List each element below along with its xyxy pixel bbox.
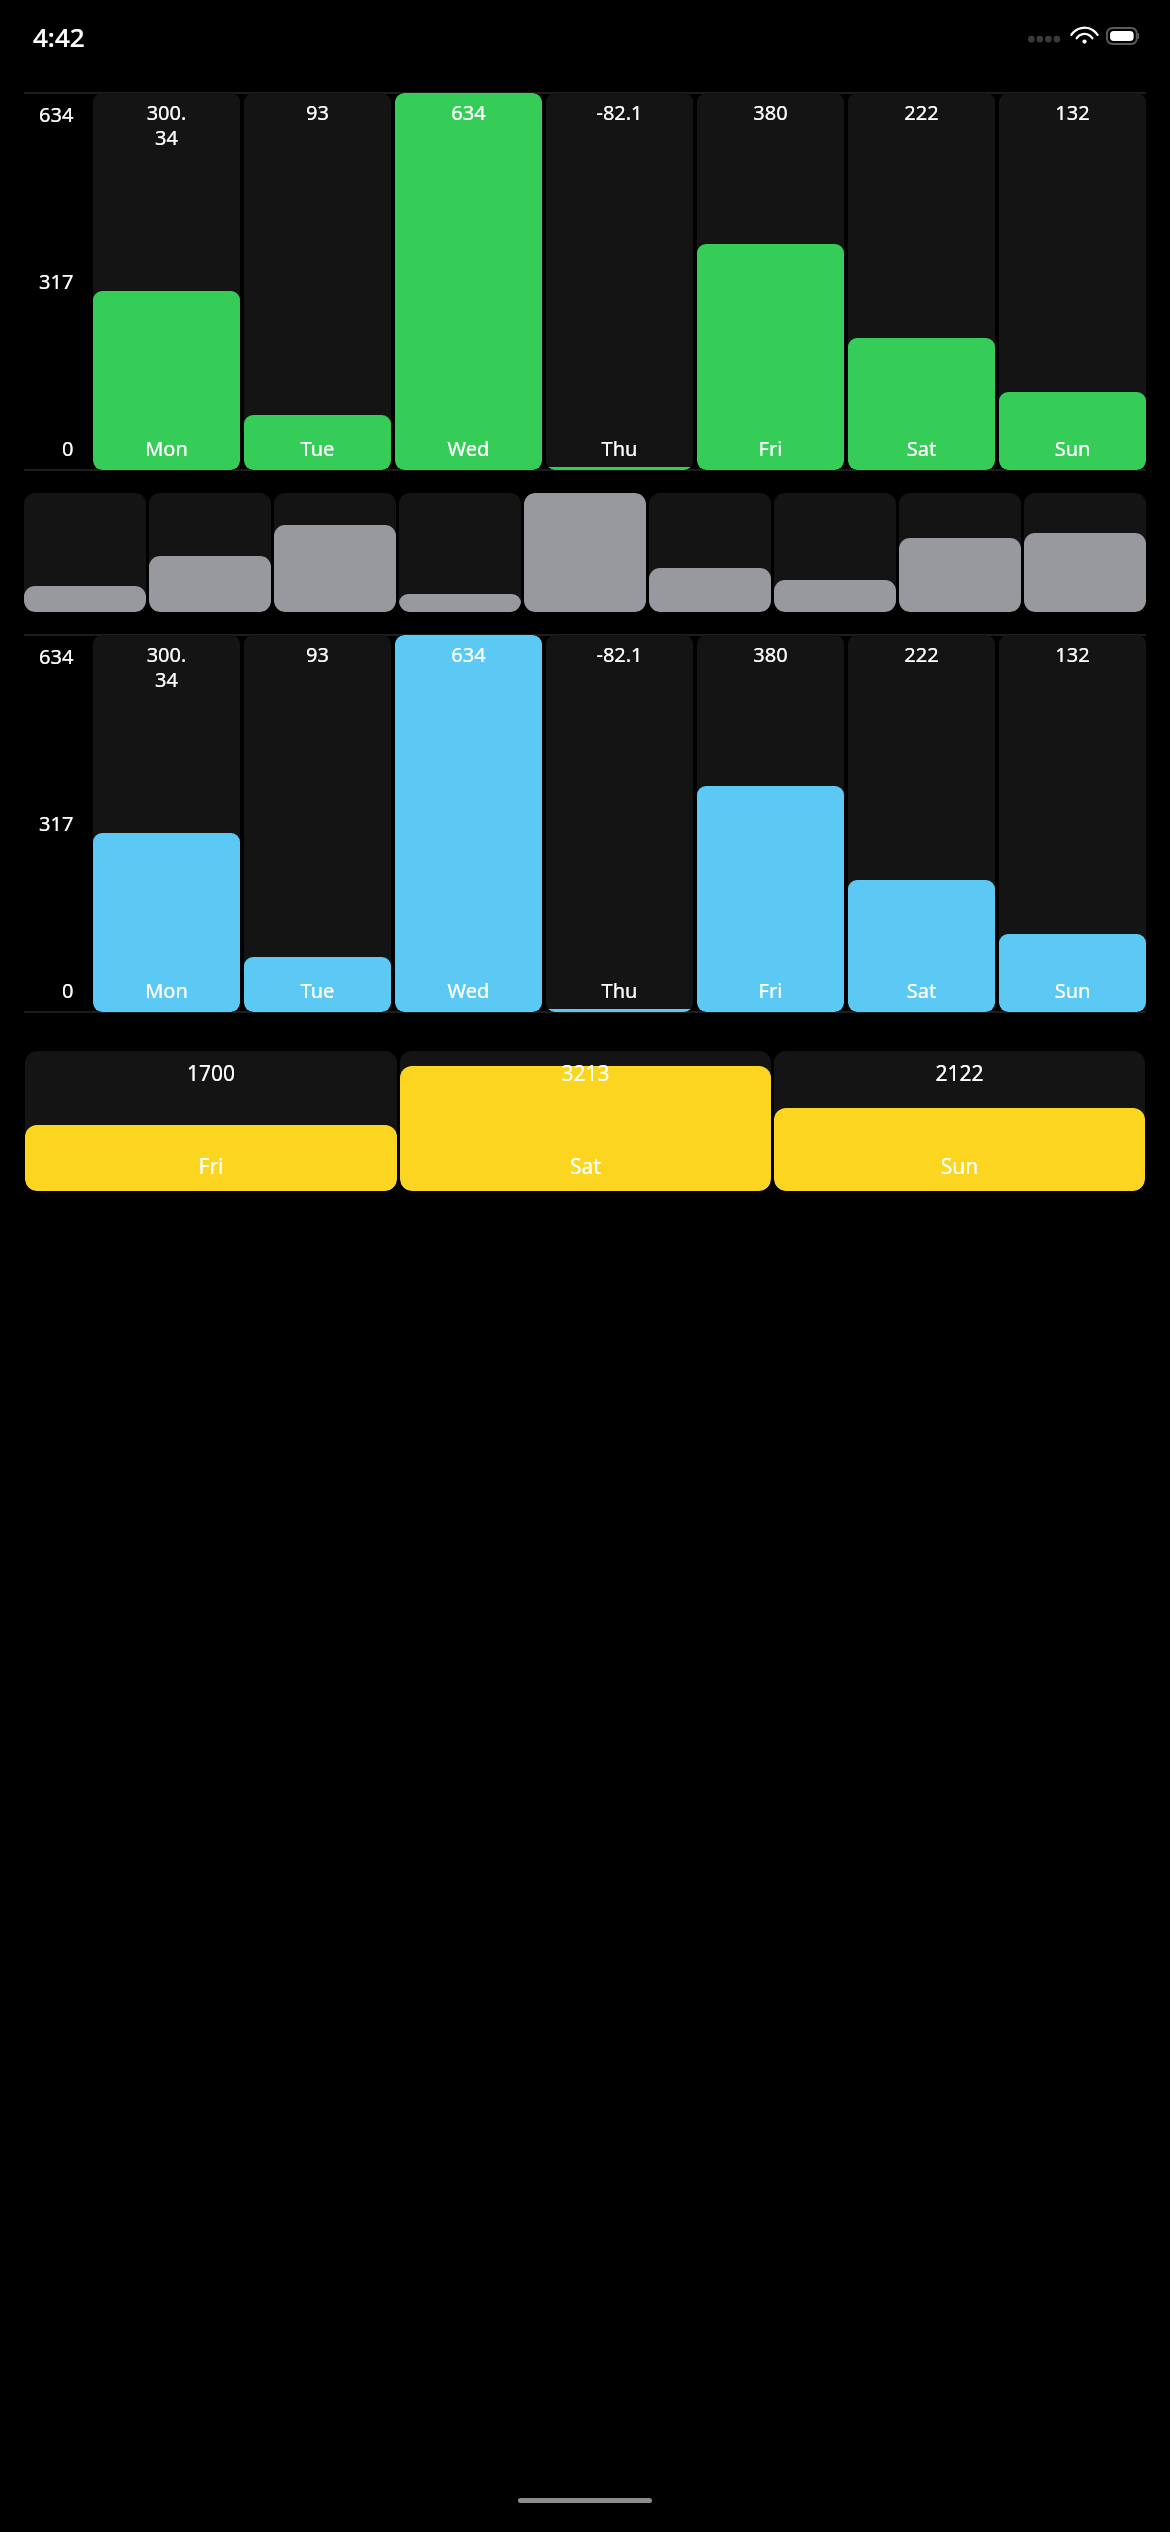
button[interactable]: 1700: [25, 1051, 1145, 1191]
button[interactable]: 380: [697, 93, 844, 470]
staticText: 380: [699, 641, 842, 668]
staticText: Thu: [546, 977, 693, 1004]
staticText: 1700: [25, 1059, 397, 1088]
button[interactable]: 634: [395, 635, 542, 1012]
staticText: Mon: [93, 435, 240, 462]
button[interactable]: [24, 493, 146, 612]
staticText: 634: [397, 99, 540, 126]
staticText: 2122: [774, 1059, 1145, 1088]
staticText: Sat: [400, 1152, 771, 1181]
button[interactable]: [899, 493, 1021, 612]
button[interactable]: -82.1: [546, 93, 693, 470]
staticText: 93: [246, 99, 389, 126]
staticText: Sun: [999, 435, 1146, 462]
button[interactable]: 634: [24, 93, 1146, 470]
button[interactable]: [774, 493, 896, 612]
staticText: 380: [699, 99, 842, 126]
button[interactable]: [1024, 493, 1146, 612]
button[interactable]: [24, 493, 1146, 612]
button[interactable]: 3213: [400, 1051, 771, 1191]
staticText: Tue: [244, 977, 391, 1004]
staticText: 222: [850, 99, 993, 126]
button[interactable]: 634: [24, 635, 1146, 1012]
staticText: 4:42: [33, 19, 85, 54]
button[interactable]: 132: [999, 635, 1146, 1012]
staticText: Wed: [395, 977, 542, 1004]
staticText: 93: [246, 641, 389, 668]
staticText: 317: [39, 810, 74, 837]
button[interactable]: 222: [848, 93, 995, 470]
button[interactable]: 2122: [774, 1051, 1145, 1191]
other: Home indicator: [518, 2498, 652, 2503]
button[interactable]: 300. 34: [93, 93, 240, 470]
staticText: 634: [39, 643, 74, 670]
staticText: 132: [1001, 99, 1144, 126]
staticText: Fri: [697, 435, 844, 462]
button[interactable]: [274, 493, 396, 612]
button[interactable]: [524, 493, 646, 612]
staticText: Fri: [697, 977, 844, 1004]
staticText: Tue: [244, 435, 391, 462]
staticText: Sun: [999, 977, 1146, 1004]
staticText: 317: [39, 268, 74, 295]
button[interactable]: [149, 493, 271, 612]
button[interactable]: 222: [848, 635, 995, 1012]
staticText: -82.1: [548, 641, 691, 668]
staticText: 0: [62, 435, 74, 462]
staticText: Thu: [546, 435, 693, 462]
button[interactable]: [399, 493, 521, 612]
staticText: Sat: [848, 435, 995, 462]
staticText: 222: [850, 641, 993, 668]
staticText: 634: [397, 641, 540, 668]
staticText: Fri: [25, 1152, 397, 1181]
staticText: 300. 34: [95, 641, 238, 693]
button[interactable]: 132: [999, 93, 1146, 470]
staticText: 132: [1001, 641, 1144, 668]
button[interactable]: 93: [244, 93, 391, 470]
staticText: 0: [62, 977, 74, 1004]
button[interactable]: -82.1: [546, 635, 693, 1012]
button[interactable]: 380: [697, 635, 844, 1012]
button[interactable]: 300. 34: [93, 635, 240, 1012]
staticText: Sun: [774, 1152, 1145, 1181]
button[interactable]: 1700: [25, 1051, 397, 1191]
staticText: Mon: [93, 977, 240, 1004]
staticText: Sat: [848, 977, 995, 1004]
button[interactable]: 634: [395, 93, 542, 470]
staticText: 634: [39, 101, 74, 128]
staticText: 300. 34: [95, 99, 238, 151]
staticText: Wed: [395, 435, 542, 462]
button[interactable]: [649, 493, 771, 612]
button[interactable]: 93: [244, 635, 391, 1012]
staticText: 3213: [400, 1059, 771, 1088]
staticText: -82.1: [548, 99, 691, 126]
